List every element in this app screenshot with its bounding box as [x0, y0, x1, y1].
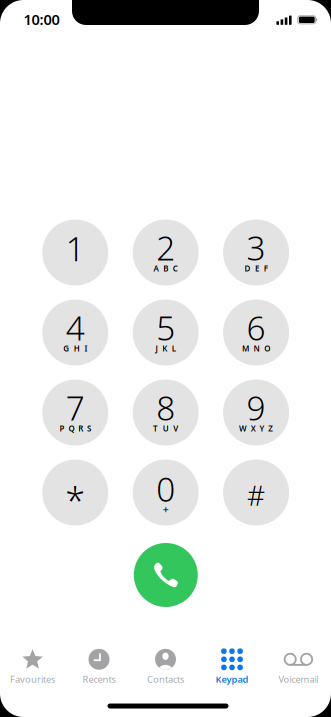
button[interactable]: 1 [42, 219, 108, 285]
staticText: 4 [66, 305, 85, 350]
staticText: Favourites [10, 673, 55, 685]
staticText: JKL [156, 343, 176, 354]
button[interactable]: 6 [223, 299, 289, 365]
button[interactable]: Recents [66, 638, 132, 686]
button[interactable]: Favourites [0, 638, 66, 686]
button[interactable]: 4 [42, 299, 108, 365]
staticText: + [163, 502, 169, 516]
staticText: PQRS [60, 423, 91, 434]
staticText: * [65, 476, 85, 524]
staticText: 5 [156, 305, 175, 350]
button[interactable]: # [223, 459, 289, 525]
staticText: 1 [66, 226, 85, 270]
button[interactable]: Contacts [132, 638, 198, 686]
staticText: 0 [156, 467, 175, 511]
button[interactable]: Voicemail [265, 638, 331, 686]
staticText: 8 [156, 385, 175, 430]
staticText: MNO [242, 343, 270, 354]
staticText: WXYZ [239, 423, 273, 434]
staticText: 6 [247, 305, 266, 350]
button[interactable]: Keypad [199, 638, 265, 686]
button[interactable]: 7 [42, 379, 108, 445]
button[interactable]: * [42, 459, 108, 525]
staticText: 2 [156, 225, 175, 270]
staticText: TUV [153, 423, 178, 434]
staticText: 7 [66, 385, 85, 430]
staticText: Contacts [147, 673, 184, 685]
button[interactable]: 3 [223, 219, 289, 285]
button[interactable]: 8 [133, 379, 199, 445]
button[interactable]: 5 [133, 299, 199, 365]
staticText: 10:00 [23, 10, 59, 29]
staticText: 3 [247, 225, 266, 270]
button[interactable]: 2 [133, 219, 199, 285]
button[interactable]: 9 [223, 379, 289, 445]
staticText: DEF [244, 263, 268, 274]
button[interactable]: Call [134, 543, 198, 607]
staticText: # [247, 476, 265, 513]
staticText: ABC [154, 263, 178, 274]
staticText: Keypad [215, 673, 248, 685]
staticText: Recents [82, 673, 115, 685]
staticText: 9 [247, 385, 266, 430]
staticText: GHI [63, 343, 87, 354]
button[interactable]: 0 [133, 459, 199, 525]
staticText: Voicemail [278, 673, 318, 685]
